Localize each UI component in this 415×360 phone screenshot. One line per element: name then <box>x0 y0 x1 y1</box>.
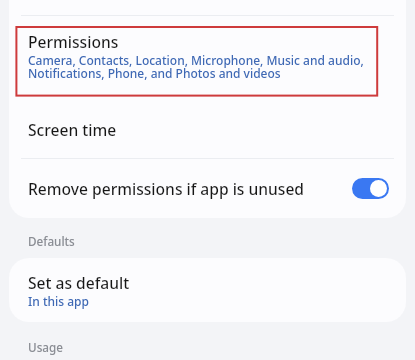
staticText: Usage <box>28 339 63 355</box>
button[interactable]: Permissions <box>9 16 406 104</box>
button[interactable]: Set as default <box>9 258 406 322</box>
button[interactable]: Screen time <box>9 102 406 156</box>
button[interactable] <box>352 178 389 199</box>
staticText: Camera, Contacts, Location, Microphone, … <box>28 52 364 82</box>
staticText: Permissions <box>28 31 119 52</box>
staticText: Defaults <box>28 233 75 249</box>
staticText: In this app <box>28 293 89 309</box>
button[interactable]: Remove permissions if app is unused <box>9 159 406 218</box>
staticText: Screen time <box>28 119 117 140</box>
staticText: Set as default <box>28 272 130 293</box>
staticText: Remove permissions if app is unused <box>28 178 344 199</box>
